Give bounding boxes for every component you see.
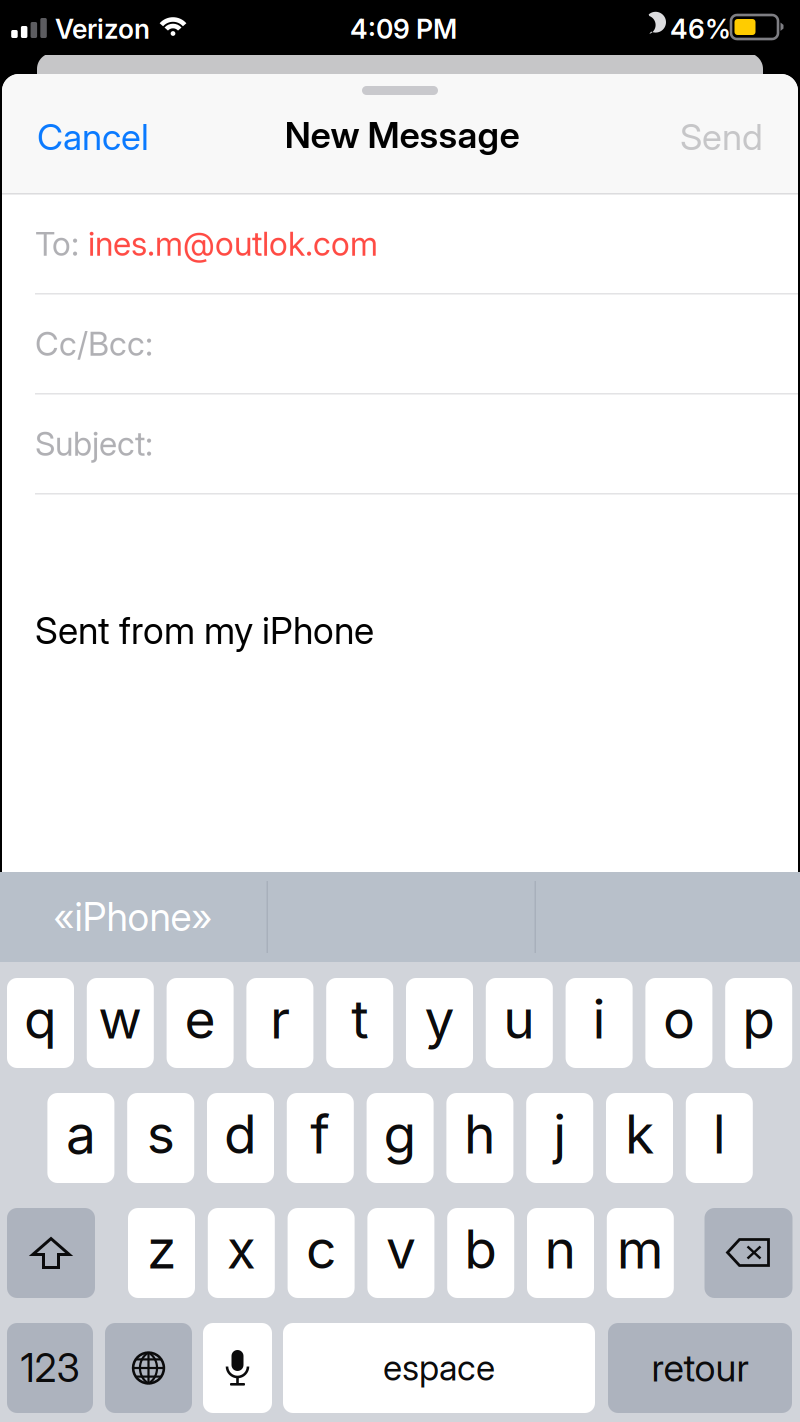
staticText: l [713, 1102, 726, 1166]
button[interactable]: Dictation [203, 1323, 272, 1413]
staticText: Verizon [55, 13, 150, 45]
staticText: 123 [20, 1345, 79, 1391]
staticText: q [24, 987, 57, 1051]
button[interactable]: q [7, 978, 74, 1068]
staticText: u [503, 987, 535, 1051]
button[interactable]: retour [608, 1323, 792, 1413]
staticText: To: [35, 224, 79, 263]
button[interactable]: m [607, 1208, 674, 1298]
staticText: n [544, 1217, 576, 1281]
staticText: p [742, 987, 775, 1051]
staticText: «iPhone» [53, 894, 212, 940]
button[interactable]: espace [283, 1323, 595, 1413]
button[interactable]: o [645, 978, 712, 1068]
button[interactable]: k [606, 1093, 673, 1183]
button[interactable]: p [725, 978, 792, 1068]
staticText: t [351, 987, 368, 1051]
staticText: g [384, 1102, 417, 1166]
button[interactable]: «iPhone» [0, 872, 266, 962]
staticText: ines.m@outlok.com [79, 224, 378, 263]
button[interactable]: h [446, 1093, 513, 1183]
button[interactable]: i [566, 978, 633, 1068]
button[interactable]: r [246, 978, 313, 1068]
button[interactable]: 123 [7, 1323, 93, 1413]
staticText: a [66, 1102, 96, 1166]
button[interactable]: Cancel [37, 106, 171, 168]
staticText: 4:09 PM [350, 13, 457, 45]
staticText: 46% [670, 13, 731, 45]
button[interactable]: Next keyboard [105, 1323, 192, 1413]
button[interactable]: v [367, 1208, 434, 1298]
staticText: i [593, 987, 606, 1051]
staticText: f [310, 1102, 330, 1166]
staticText: x [227, 1217, 256, 1281]
staticText: r [270, 987, 290, 1051]
button[interactable]: n [527, 1208, 594, 1298]
button[interactable]: d [207, 1093, 274, 1183]
staticText: h [464, 1102, 496, 1166]
button[interactable]: e [167, 978, 234, 1068]
staticText: New Message [284, 113, 519, 157]
button[interactable]: x [208, 1208, 275, 1298]
staticText: k [625, 1102, 654, 1166]
button[interactable]: Send [661, 106, 763, 168]
staticText: y [424, 987, 454, 1051]
staticText: o [663, 987, 695, 1051]
staticText: Cc/Bcc: [35, 324, 153, 363]
staticText: Cancel [37, 115, 149, 159]
button[interactable]: t [326, 978, 393, 1068]
staticText: w [98, 987, 142, 1051]
staticText: j [553, 1102, 566, 1166]
staticText: c [306, 1217, 336, 1281]
button[interactable]: l [686, 1093, 753, 1183]
button[interactable]: j [526, 1093, 593, 1183]
button[interactable]: To: [0, 194, 800, 294]
button[interactable]: z [128, 1208, 195, 1298]
button[interactable]: b [447, 1208, 514, 1298]
staticText: Sent from my iPhone [35, 608, 374, 653]
button[interactable]: s [127, 1093, 194, 1183]
staticText: v [386, 1217, 416, 1281]
button[interactable]: y [406, 978, 473, 1068]
staticText: s [147, 1102, 175, 1166]
staticText: Send [680, 115, 763, 159]
staticText: z [147, 1217, 176, 1281]
button[interactable]: Shift [7, 1208, 95, 1298]
button[interactable]: Delete [704, 1208, 792, 1298]
button[interactable]: Cc/Bcc: [0, 294, 800, 394]
staticText: m [617, 1217, 664, 1281]
staticText: b [464, 1217, 497, 1281]
staticText: e [185, 987, 216, 1051]
button[interactable]: c [288, 1208, 355, 1298]
button[interactable]: a [47, 1093, 114, 1183]
button[interactable]: g [367, 1093, 434, 1183]
button[interactable]: u [486, 978, 553, 1068]
button[interactable]: Subject: [0, 394, 800, 494]
button[interactable]: w [87, 978, 154, 1068]
staticText: d [224, 1102, 257, 1166]
button[interactable]: f [287, 1093, 354, 1183]
staticText: Subject: [35, 424, 153, 463]
staticText: retour [651, 1345, 748, 1391]
staticText: espace [383, 1347, 495, 1389]
